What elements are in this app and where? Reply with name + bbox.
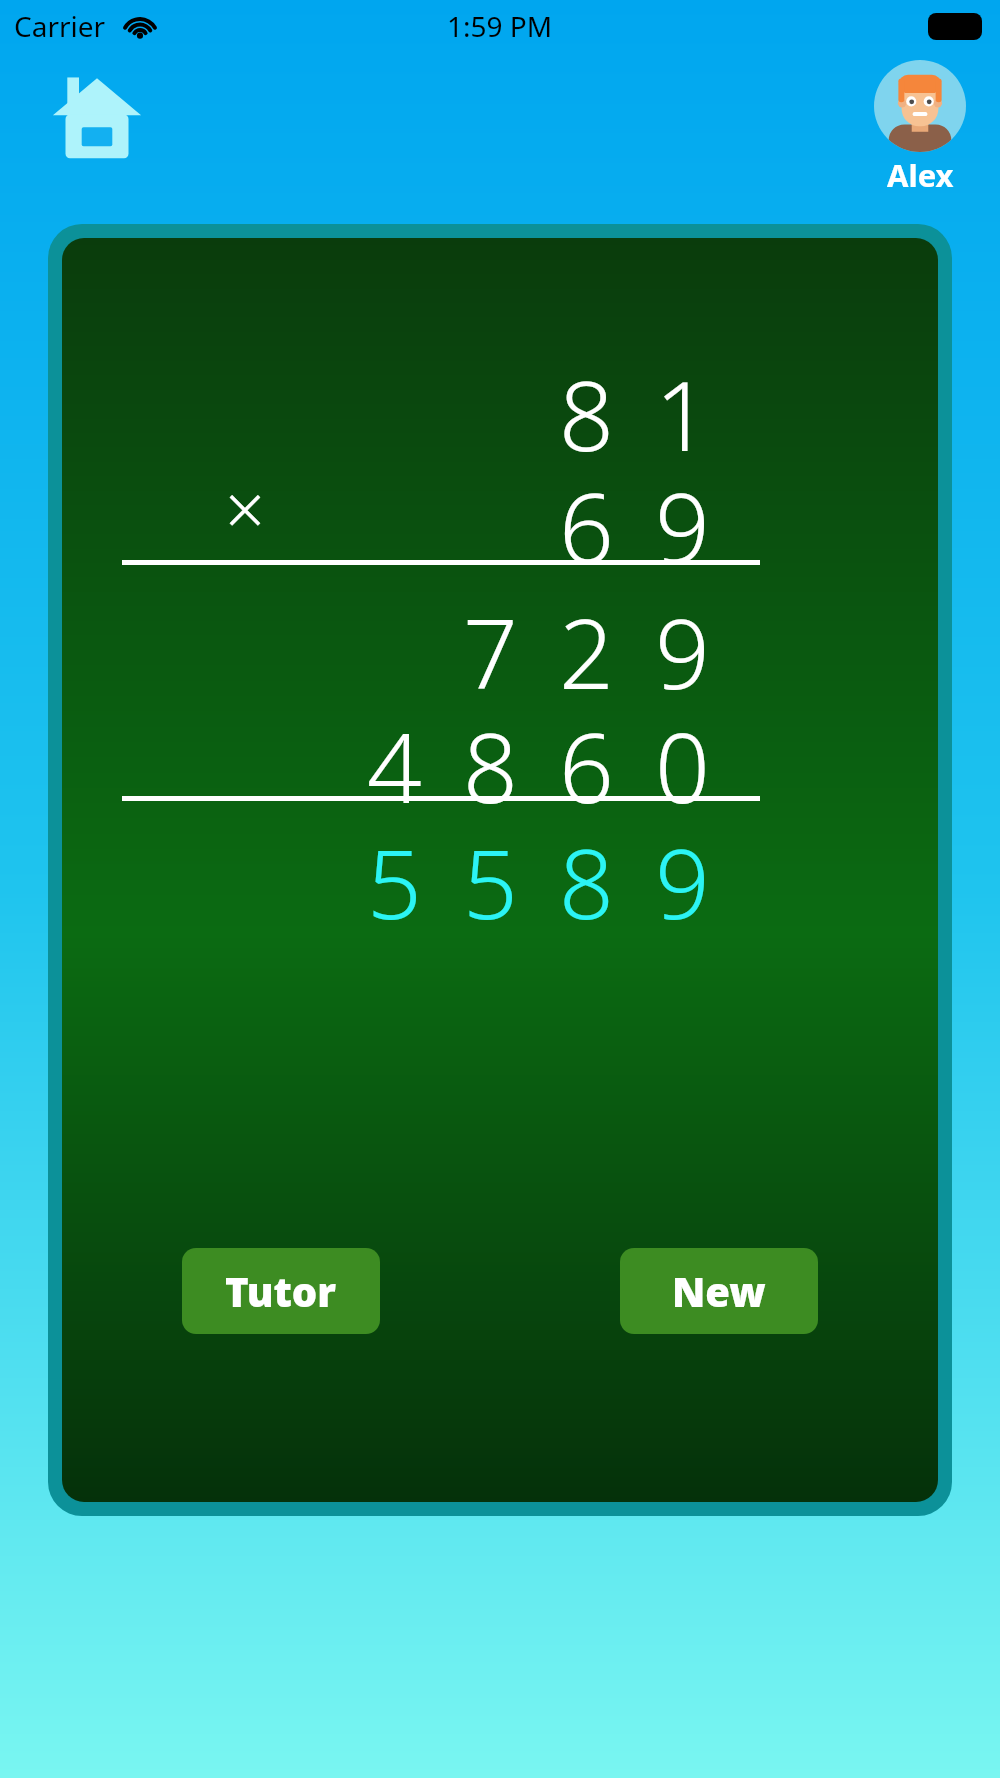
staticText: 9 [655, 816, 710, 947]
button[interactable]: Alex [868, 60, 972, 196]
staticText: 6 [559, 460, 614, 591]
button[interactable]: New [620, 1248, 818, 1334]
staticText: 8 [463, 700, 518, 831]
staticText: 2 [559, 586, 614, 717]
staticText: 1 [655, 348, 710, 479]
staticText: 5 [367, 816, 422, 947]
staticText: Tutor [225, 1264, 337, 1318]
staticText: 9 [655, 460, 710, 591]
staticText: × [225, 460, 265, 546]
staticText: 7 [463, 586, 518, 717]
staticText: Carrier [14, 7, 106, 45]
staticText: 9 [655, 586, 710, 717]
staticText: 0 [655, 700, 710, 831]
staticText: 1:59 PM [447, 7, 553, 45]
staticText: 4 [367, 700, 422, 831]
staticText: 8 [559, 348, 614, 479]
staticText: 5 [463, 816, 518, 947]
button[interactable]: Home [52, 74, 142, 160]
staticText: New [672, 1264, 766, 1318]
button[interactable]: Tutor [182, 1248, 380, 1334]
staticText: 6 [559, 700, 614, 831]
staticText: 8 [559, 816, 614, 947]
staticText: Alex [887, 154, 954, 196]
